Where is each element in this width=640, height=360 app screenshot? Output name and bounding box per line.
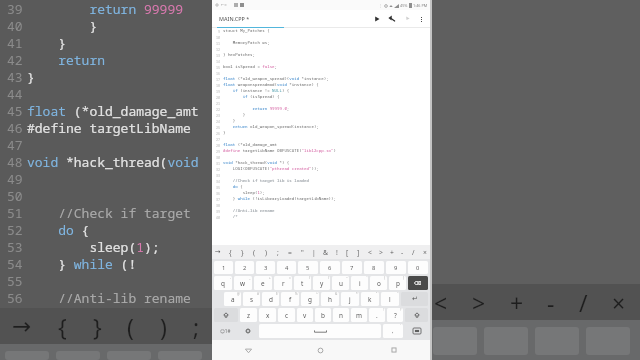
button[interactable]: 0 xyxy=(408,261,428,274)
staticText: z xyxy=(247,311,251,320)
button[interactable]: 5 xyxy=(298,261,318,274)
button[interactable]: ] xyxy=(353,245,364,259)
button[interactable]: ' xyxy=(381,292,399,306)
button[interactable]: v xyxy=(297,308,313,322)
staticText: i xyxy=(359,279,361,288)
button[interactable]: Back xyxy=(212,340,284,360)
staticText: - xyxy=(401,248,404,257)
staticText: ; xyxy=(277,248,279,257)
button[interactable]: = xyxy=(274,276,292,290)
button[interactable]: 9 xyxy=(386,261,406,274)
button[interactable]: ? xyxy=(387,308,403,322)
staticText: 36 xyxy=(216,191,220,195)
button[interactable]: _ xyxy=(234,276,252,290)
staticText: 10 xyxy=(216,35,220,39)
button[interactable]: [ xyxy=(342,245,353,259)
staticText: //Check if target lib is loaded xyxy=(223,178,309,184)
button[interactable]: Enter xyxy=(401,292,428,306)
button[interactable]: ˙˙ xyxy=(383,324,403,338)
staticText: + xyxy=(510,287,524,318)
staticText: return old_weapon_sp xyxy=(27,51,212,68)
staticText: $ xyxy=(276,292,278,296)
button[interactable]: { xyxy=(224,245,236,259)
staticText: 39 xyxy=(216,209,220,213)
button[interactable]: ) xyxy=(260,245,272,259)
button[interactable]: m xyxy=(351,308,367,322)
button[interactable]: ( xyxy=(248,245,260,259)
button[interactable]: Shift xyxy=(405,308,428,322)
button[interactable]: z xyxy=(240,308,257,322)
button[interactable]: 6 xyxy=(320,261,340,274)
button[interactable]: " xyxy=(361,292,379,306)
button[interactable]: < xyxy=(364,245,375,259)
button[interactable]: n xyxy=(333,308,349,322)
staticText: do { xyxy=(27,221,90,238)
button[interactable]: MAIN.CPP * xyxy=(219,15,250,22)
staticText: struct My_Patches { xyxy=(223,28,270,34)
button[interactable]: ^ xyxy=(301,292,319,306)
button[interactable]: 1 xyxy=(214,261,233,274)
staticText: & xyxy=(323,248,328,257)
button[interactable]: 3 xyxy=(256,261,275,274)
staticText: 53 xyxy=(7,238,23,255)
button[interactable]: / xyxy=(408,245,419,259)
button[interactable]: Undo xyxy=(384,11,399,26)
staticText: % xyxy=(295,292,298,296)
button[interactable]: x xyxy=(259,308,276,322)
button[interactable]: - xyxy=(397,245,408,259)
staticText: ( xyxy=(253,248,256,257)
button[interactable]: " xyxy=(296,245,308,259)
button[interactable]: ; xyxy=(272,245,284,259)
staticText: 23 xyxy=(216,113,220,117)
button[interactable]: ! xyxy=(369,308,385,322)
button[interactable]: Settings xyxy=(238,323,258,339)
staticText: & xyxy=(335,292,338,296)
button[interactable]: ) xyxy=(313,276,330,290)
button[interactable]: * xyxy=(341,292,359,306)
button[interactable]: 4 xyxy=(277,261,296,274)
button[interactable]: @ xyxy=(224,292,241,306)
button[interactable]: { xyxy=(370,276,387,290)
button[interactable]: | xyxy=(308,245,320,259)
button[interactable]: × xyxy=(419,245,430,259)
staticText: o xyxy=(377,279,381,288)
button[interactable]: ` xyxy=(351,276,368,290)
button[interactable]: Change keyboard xyxy=(404,323,429,339)
button[interactable]: Shift xyxy=(214,308,238,322)
button[interactable]: - xyxy=(214,276,232,290)
button[interactable]: c xyxy=(278,308,295,322)
button[interactable]: 2 xyxy=(235,261,254,274)
button[interactable]: 7 xyxy=(342,261,362,274)
button[interactable]: & xyxy=(321,292,339,306)
staticText: s xyxy=(250,295,254,304)
button[interactable]: + xyxy=(254,276,272,290)
button[interactable]: b xyxy=(315,308,331,322)
button[interactable]: Backspace xyxy=(408,276,428,290)
button[interactable]: % xyxy=(281,292,299,306)
button[interactable]: Recent apps xyxy=(357,340,430,360)
button[interactable]: Space xyxy=(259,324,381,338)
button[interactable]: & xyxy=(320,245,331,259)
button[interactable]: ~ xyxy=(332,276,349,290)
button[interactable]: Run xyxy=(369,11,384,26)
staticText: 52 xyxy=(7,221,23,238)
button[interactable]: $ xyxy=(262,292,279,306)
button[interactable]: } xyxy=(236,245,248,259)
button[interactable]: ( xyxy=(294,276,311,290)
staticText: v xyxy=(303,311,307,320)
staticText: = xyxy=(289,276,291,280)
button[interactable]: Home xyxy=(284,340,357,360)
button[interactable]: > xyxy=(375,245,386,259)
button[interactable]: = xyxy=(284,245,296,259)
button[interactable]: 8 xyxy=(364,261,384,274)
button[interactable]: + xyxy=(386,245,397,259)
button[interactable]: # xyxy=(243,292,260,306)
staticText: 28 xyxy=(216,143,220,147)
button[interactable]: } xyxy=(389,276,406,290)
button[interactable]: Symbols xyxy=(213,323,238,339)
button[interactable]: → xyxy=(212,245,224,259)
button[interactable]: ! xyxy=(331,245,342,259)
button[interactable]: More options xyxy=(414,12,428,26)
staticText: * xyxy=(356,292,358,296)
button[interactable]: Redo xyxy=(399,11,414,26)
